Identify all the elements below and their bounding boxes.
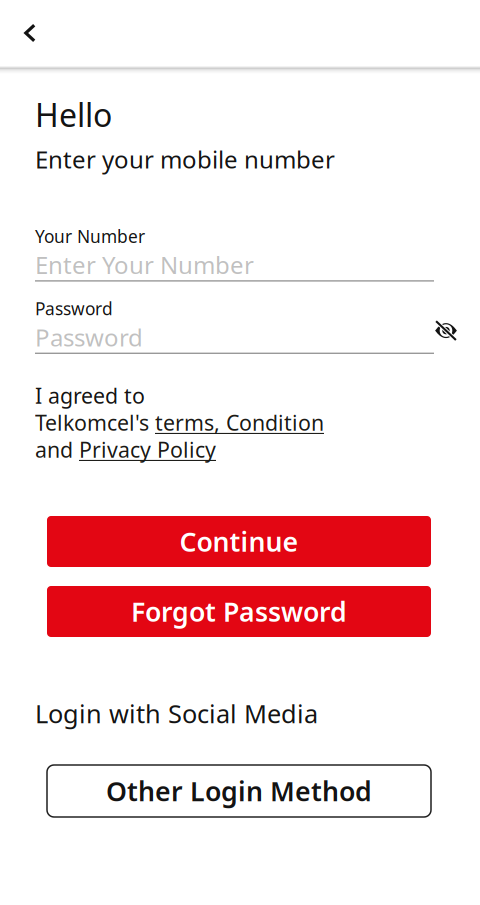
button[interactable]: Forgot Password [47, 586, 431, 637]
staticText: Password [35, 321, 143, 353]
staticText: Telkomcel's terms, Condition [35, 408, 324, 437]
staticText: Login with Social Media [35, 697, 318, 730]
button[interactable]: Continue [47, 516, 431, 567]
staticText: Continue [179, 524, 298, 559]
staticText: I agreed to [35, 381, 145, 410]
staticText: Other Login Method [106, 773, 372, 809]
button[interactable]: Show password [429, 316, 463, 346]
staticText: Hello [35, 93, 112, 136]
staticText: Forgot Password [131, 594, 347, 629]
staticText: Enter Your Number [35, 249, 254, 281]
staticText: Your Number [35, 225, 145, 248]
button[interactable]: Other Login Method [47, 765, 431, 817]
button[interactable]: Back [10, 11, 50, 55]
staticText: Enter your mobile number [35, 143, 335, 175]
staticText: Password [35, 297, 113, 320]
staticText: and Privacy Policy [35, 435, 216, 464]
